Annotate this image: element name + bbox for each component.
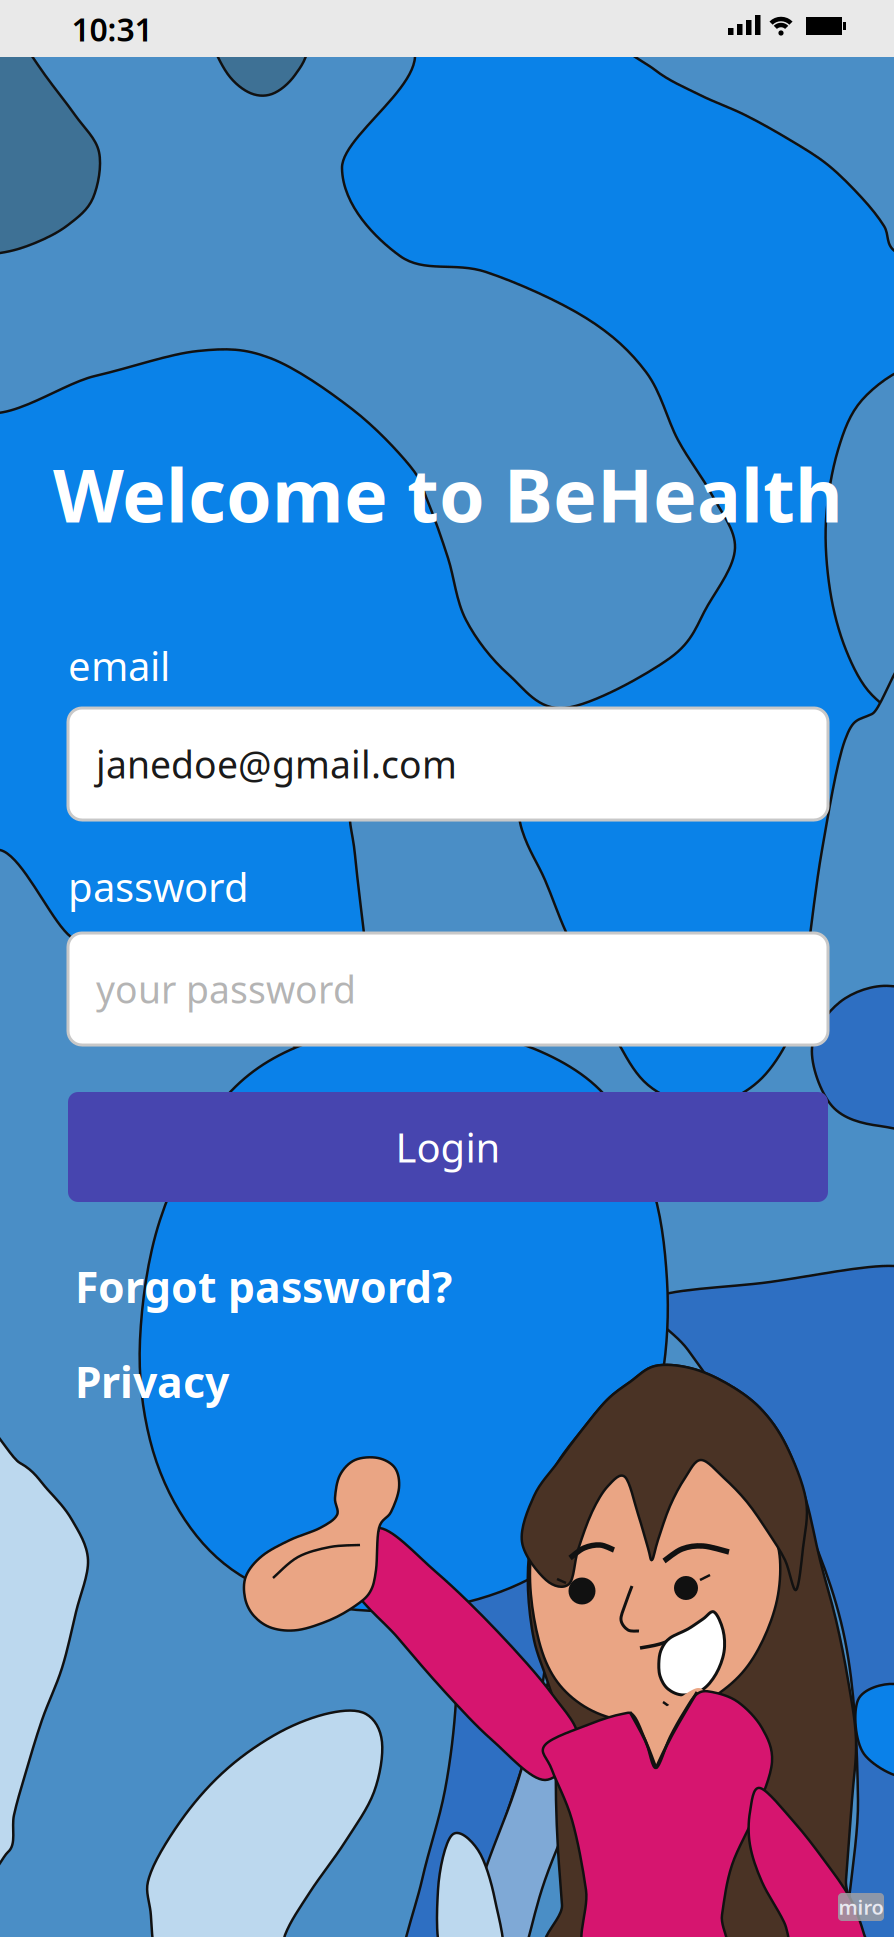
button[interactable]: Privacy bbox=[75, 1353, 229, 1410]
staticText: Forgot password? bbox=[75, 1258, 452, 1315]
staticText: janedoe@gmail.com bbox=[96, 739, 457, 789]
staticText: your password bbox=[96, 964, 356, 1014]
staticText: miro bbox=[838, 1894, 883, 1920]
staticText: 10:31 bbox=[71, 8, 152, 50]
button[interactable]: your password bbox=[68, 933, 828, 1045]
staticText: password bbox=[68, 860, 249, 913]
staticText: Welcome to BeHealth bbox=[53, 445, 843, 543]
button[interactable]: Login bbox=[68, 1092, 828, 1202]
staticText: Login bbox=[395, 1120, 500, 1173]
staticText: email bbox=[68, 639, 170, 692]
button[interactable]: Forgot password? bbox=[75, 1258, 452, 1315]
button[interactable]: janedoe@gmail.com bbox=[68, 708, 828, 820]
staticText: Privacy bbox=[75, 1353, 229, 1410]
